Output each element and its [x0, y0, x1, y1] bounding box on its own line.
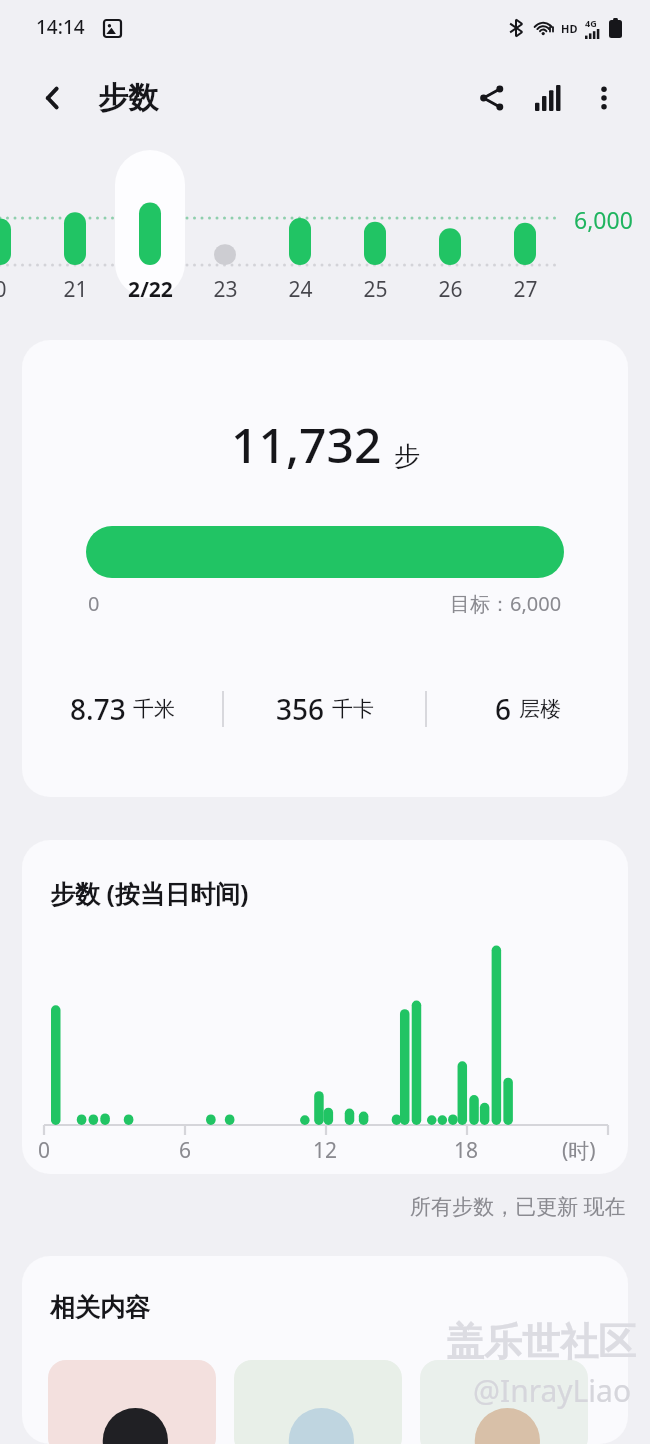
staticText: @InrayLiao: [473, 1370, 632, 1411]
button[interactable]: 2/22: [120, 275, 180, 311]
staticText: HD: [561, 21, 578, 36]
staticText: 0: [0, 275, 7, 304]
button[interactable]: Share: [464, 70, 520, 126]
button[interactable]: 356: [224, 690, 425, 728]
staticText: 4G: [585, 17, 597, 29]
button[interactable]: 21: [45, 275, 105, 311]
staticText: 27: [513, 275, 538, 304]
button[interactable]: 0: [0, 275, 30, 311]
button[interactable]: 27: [495, 275, 555, 311]
staticText: 0: [26, 1136, 62, 1165]
staticText: 18: [448, 1136, 484, 1165]
button[interactable]: 相关内容: [22, 1256, 628, 1444]
staticText: 步: [394, 440, 420, 473]
staticText: 8.73: [70, 690, 126, 728]
staticText: 14:14: [36, 14, 85, 40]
staticText: 步数 (按当日时间): [50, 876, 249, 910]
staticText: 千米: [133, 696, 175, 722]
staticText: 目标：6,000: [450, 590, 562, 617]
staticText: (时): [562, 1136, 596, 1165]
staticText: 23: [213, 275, 238, 304]
staticText: 12: [307, 1136, 343, 1165]
button[interactable]: [420, 1360, 588, 1444]
button[interactable]: 23: [195, 275, 255, 311]
staticText: 6,000: [574, 204, 633, 235]
button[interactable]: 25: [345, 275, 405, 311]
staticText: 6: [167, 1136, 203, 1165]
staticText: 25: [363, 275, 388, 304]
button[interactable]: [48, 1360, 216, 1444]
button[interactable]: More options: [576, 70, 632, 126]
button[interactable]: Back: [26, 71, 80, 125]
staticText: 盖乐世社区: [446, 1318, 636, 1366]
staticText: 356: [276, 690, 325, 728]
staticText: 26: [438, 275, 463, 304]
staticText: 11,732: [231, 412, 382, 477]
staticText: 6: [495, 690, 512, 728]
staticText: 24: [288, 275, 313, 304]
button[interactable]: 26: [420, 275, 480, 311]
button[interactable]: 11,732: [22, 340, 628, 797]
staticText: 层楼: [519, 696, 561, 722]
button[interactable]: 6: [427, 690, 628, 728]
button[interactable]: 24: [270, 275, 330, 311]
staticText: 21: [63, 275, 88, 304]
button[interactable]: Chart: [520, 70, 576, 126]
staticText: 步数: [98, 79, 158, 117]
staticText: 相关内容: [50, 1292, 150, 1323]
button[interactable]: 8.73: [22, 690, 222, 728]
button[interactable]: 步数 (按当日时间): [22, 840, 628, 1174]
staticText: 所有步数，已更新 现在: [410, 1192, 626, 1221]
staticText: 0: [88, 590, 100, 617]
staticText: 千卡: [332, 696, 374, 722]
button[interactable]: [234, 1360, 402, 1444]
staticText: 2/22: [128, 275, 173, 304]
